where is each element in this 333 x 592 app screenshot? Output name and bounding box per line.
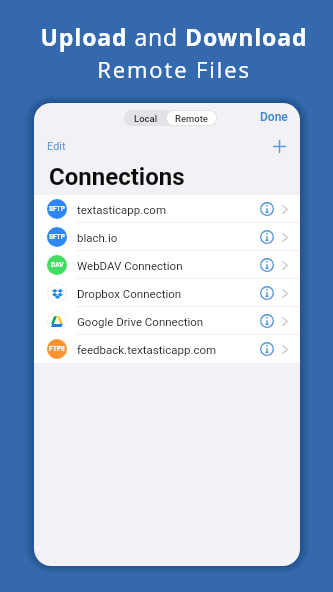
- staticText: Local: [134, 113, 158, 124]
- staticText: blach.io: [77, 231, 118, 244]
- staticText: Connections: [49, 163, 185, 191]
- button[interactable]: Done: [248, 107, 300, 127]
- staticText: textasticapp.com: [77, 203, 166, 216]
- button[interactable]: DAV: [34, 251, 300, 279]
- button[interactable]: Local: [125, 111, 167, 125]
- staticText: SFTP: [49, 205, 65, 213]
- staticText: Dropbox Connection: [77, 287, 182, 300]
- button[interactable]: Google Drive Connection: [34, 307, 300, 335]
- staticText: Remote Files: [97, 54, 251, 84]
- button[interactable]: SFTP: [34, 195, 300, 223]
- staticText: Done: [260, 110, 288, 124]
- button[interactable]: Info: [260, 342, 274, 356]
- button[interactable]: Info: [260, 286, 274, 300]
- staticText: Google Drive Connection: [77, 315, 204, 328]
- button[interactable]: Info: [260, 314, 274, 328]
- button[interactable]: Edit: [41, 136, 72, 157]
- button[interactable]: Remote: [167, 111, 216, 125]
- button[interactable]: FTPS: [34, 335, 300, 363]
- button[interactable]: Dropbox Connection: [34, 279, 300, 307]
- button[interactable]: SFTP: [34, 223, 300, 251]
- staticText: feedback.textasticapp.com: [77, 343, 217, 356]
- button[interactable]: Info: [260, 258, 274, 272]
- staticText: Upload and Download: [40, 21, 308, 52]
- button[interactable]: Add connection: [267, 134, 292, 159]
- staticText: Remote: [175, 113, 208, 124]
- staticText: Edit: [47, 140, 66, 153]
- staticText: SFTP: [49, 233, 65, 241]
- staticText: DAV: [51, 261, 64, 269]
- staticText: WebDAV Connection: [77, 259, 183, 272]
- button[interactable]: Info: [260, 202, 274, 216]
- button[interactable]: Info: [260, 230, 274, 244]
- staticText: FTPS: [49, 345, 65, 353]
